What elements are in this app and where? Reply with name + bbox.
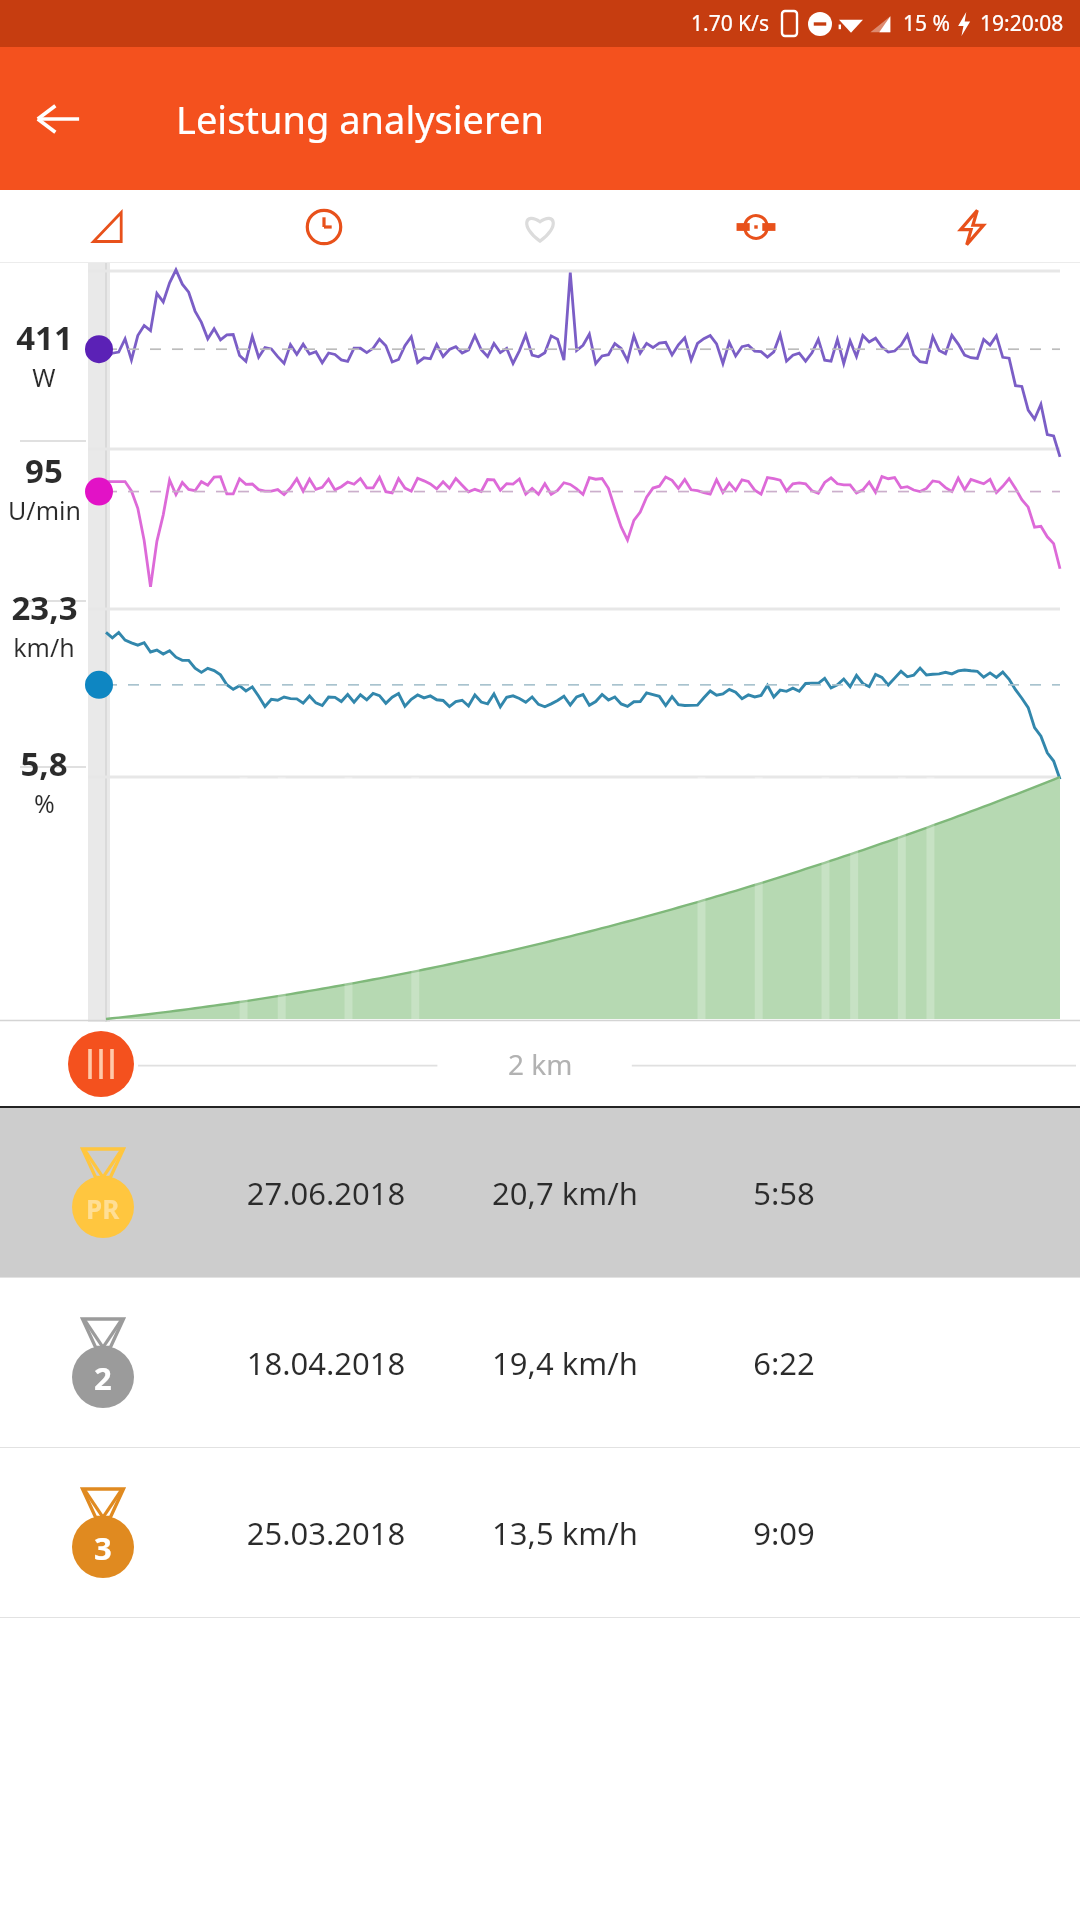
staticText: 27.06.2018 [206,1172,446,1214]
staticText: 2 km [508,1045,573,1083]
staticText: 3 [94,1527,112,1569]
button[interactable]: Diagramm verschieben [68,1031,134,1097]
staticText: Leistung analysieren [176,93,544,145]
button[interactable]: Herzfrequenz [432,190,648,263]
staticText: U/min [8,493,81,527]
staticText: 18.04.2018 [206,1342,446,1384]
staticText: W [32,360,56,394]
staticText: 5,8 [20,741,68,786]
staticText: 1.70 K/s [691,9,769,38]
staticText: km/h [13,630,75,664]
button[interactable]: Zeit [216,190,432,263]
staticText: 95 [25,448,63,493]
staticText: 2 [94,1357,112,1399]
staticText: 23,3 [11,585,78,630]
staticText: PR [86,1191,120,1226]
staticText: 20,7 km/h [446,1172,684,1214]
button[interactable]: Zurück [22,83,94,155]
button[interactable]: 2 [0,1278,1080,1447]
staticText: 15 % [903,9,950,38]
button[interactable]: Steigung [0,190,216,263]
staticText: 25.03.2018 [206,1512,446,1554]
staticText: % [34,786,55,820]
button[interactable]: 3 [0,1448,1080,1617]
staticText: 13,5 km/h [446,1512,684,1554]
button[interactable]: Trittfrequenz [648,190,864,263]
staticText: 5:58 [684,1172,884,1214]
staticText: 411 [16,315,73,360]
staticText: 19:20:08 [980,9,1064,38]
button[interactable]: PR [0,1108,1080,1277]
staticText: 9:09 [684,1512,884,1554]
staticText: 6:22 [684,1342,884,1384]
staticText: 19,4 km/h [446,1342,684,1384]
button[interactable]: Leistung [864,190,1080,263]
